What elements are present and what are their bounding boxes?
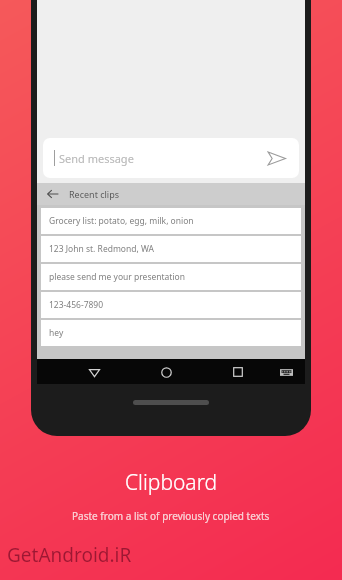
button[interactable]: Back (83, 361, 105, 383)
button[interactable]: Keyboard (275, 361, 297, 383)
button[interactable]: Recents (227, 361, 249, 383)
button[interactable]: Back (45, 186, 61, 202)
staticText: hey (49, 327, 64, 339)
staticText: Grocery list: potato, egg, milk, onion (49, 215, 194, 227)
staticText: Clipboard (125, 468, 218, 497)
staticText: GetAndroid.iR (7, 542, 132, 568)
button[interactable]: Send (263, 145, 289, 171)
staticText: 123 John st. Redmond, WA (49, 243, 154, 255)
button[interactable]: 123 John st. Redmond, WA (41, 236, 301, 262)
button[interactable]: Grocery list: potato, egg, milk, onion (41, 208, 301, 234)
staticText: Paste from a list of previously copied t… (72, 509, 270, 523)
staticText: Recent clips (69, 188, 120, 200)
button[interactable]: Back (37, 183, 305, 205)
button[interactable]: please send me your presentation (41, 264, 301, 290)
staticText: 123-456-7890 (49, 299, 104, 311)
staticText: please send me your presentation (49, 271, 185, 283)
button[interactable]: hey (41, 320, 301, 346)
button[interactable]: Home (155, 361, 177, 383)
button[interactable]: Send message (43, 138, 299, 178)
staticText: Send message (59, 151, 134, 166)
button[interactable]: 123-456-7890 (41, 292, 301, 318)
